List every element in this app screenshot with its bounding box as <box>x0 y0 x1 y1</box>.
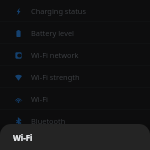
button[interactable]: Bluetooth <box>0 110 150 132</box>
staticText: Wi-Fi network <box>31 50 79 60</box>
button[interactable]: Wi-Fi strength <box>0 66 150 88</box>
staticText: Bluetooth <box>31 116 66 126</box>
staticText: Wi-Fi strength <box>31 72 80 82</box>
button[interactable]: Wi-Fi <box>0 88 150 110</box>
staticText: Battery level <box>31 28 74 38</box>
button[interactable]: Battery level <box>0 22 150 44</box>
staticText: Charging status <box>31 6 86 16</box>
button[interactable]: Wi-Fi network <box>0 44 150 66</box>
staticText: Wi-Fi <box>31 94 48 104</box>
button[interactable]: Charging status <box>0 0 150 22</box>
button[interactable]: Wi-Fi quick settings <box>0 124 150 150</box>
staticText: Wi-Fi <box>13 132 33 143</box>
